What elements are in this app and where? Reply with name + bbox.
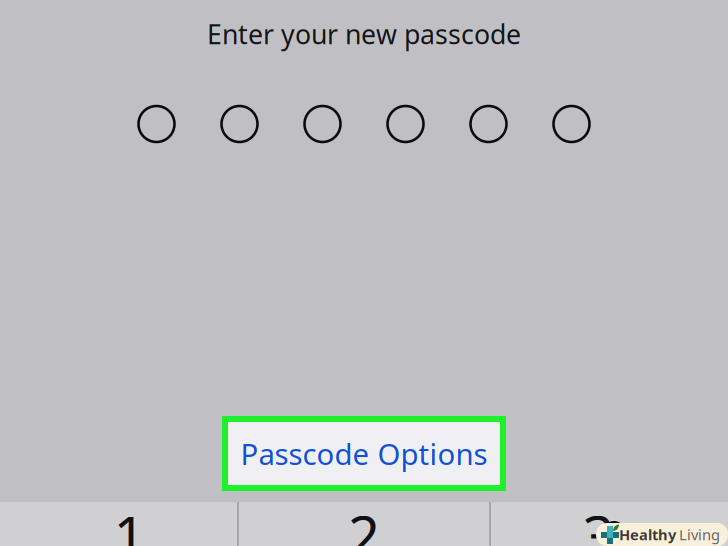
staticText: 1 bbox=[113, 498, 145, 546]
staticText: Healthy bbox=[619, 525, 676, 544]
staticText: 2 bbox=[348, 498, 380, 546]
staticText: 3 bbox=[582, 498, 614, 546]
button[interactable]: 2 bbox=[239, 502, 489, 546]
staticText: Enter your new passcode bbox=[207, 16, 521, 52]
staticText: Passcode Options bbox=[240, 434, 487, 473]
button[interactable]: 1 bbox=[0, 502, 237, 546]
button[interactable]: Passcode Options bbox=[222, 416, 506, 491]
button[interactable]: 3 bbox=[491, 502, 728, 546]
staticText: Living bbox=[679, 525, 720, 544]
